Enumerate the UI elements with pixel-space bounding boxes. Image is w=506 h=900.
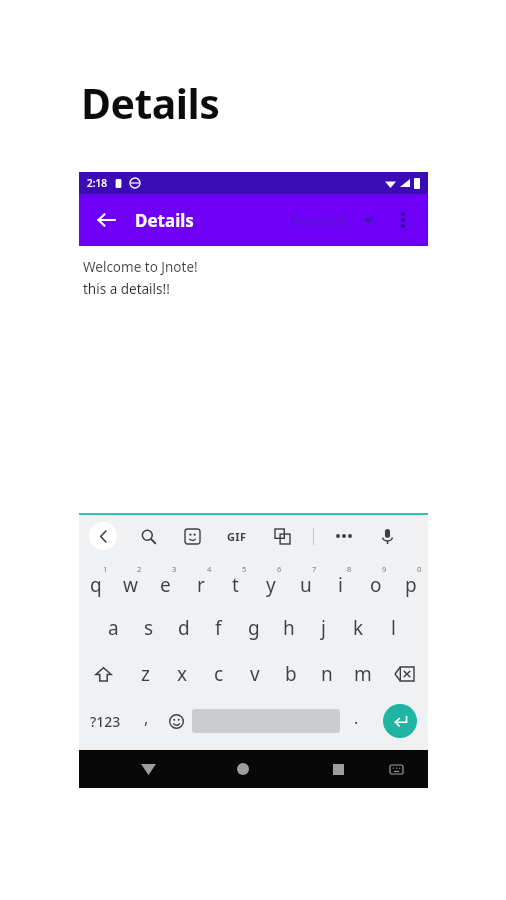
button[interactable]: Emoji (160, 697, 192, 745)
staticText: x (177, 661, 188, 687)
button[interactable]: Home (226, 752, 260, 786)
button[interactable]: Shift (79, 651, 127, 697)
staticText: Welcome to Jnote! (83, 258, 198, 276)
staticText: n (321, 661, 333, 687)
button[interactable]: Voice input (374, 523, 400, 549)
button[interactable]: s (131, 605, 166, 651)
button[interactable]: u (288, 559, 323, 605)
button[interactable]: w (113, 559, 148, 605)
staticText: 5 (242, 564, 247, 574)
button[interactable]: Backspace (381, 651, 428, 697)
staticText: b (285, 661, 297, 687)
staticText: SAVE (116, 529, 148, 545)
staticText: Personal (291, 211, 345, 229)
button[interactable]: , (132, 697, 160, 745)
button[interactable]: k (341, 605, 376, 651)
button[interactable]: l (376, 605, 411, 651)
button[interactable]: y (253, 559, 288, 605)
button[interactable]: SAVE (96, 519, 168, 555)
button[interactable]: More options (388, 205, 418, 235)
staticText: 7 (312, 564, 317, 574)
button[interactable]: q (79, 559, 113, 605)
button[interactable]: Delete (362, 522, 408, 568)
button[interactable]: Recents (321, 752, 355, 786)
button[interactable]: a (96, 605, 131, 651)
staticText: u (300, 572, 312, 598)
staticText: p (405, 572, 417, 598)
button[interactable]: Stickers (179, 523, 205, 549)
staticText: j (321, 615, 326, 641)
button[interactable]: ?123 (79, 697, 132, 745)
button[interactable]: h (271, 605, 306, 651)
staticText: 1 (103, 564, 108, 574)
button[interactable]: j (306, 605, 341, 651)
staticText: z (141, 661, 150, 687)
button[interactable]: z (127, 651, 164, 697)
staticText: f (215, 615, 222, 641)
staticText: 0 (417, 564, 422, 574)
staticText: 3 (172, 564, 177, 574)
button[interactable]: r (183, 559, 218, 605)
staticText: w (123, 572, 138, 598)
button[interactable]: Enter (383, 704, 417, 738)
staticText: Details (81, 75, 220, 131)
button[interactable]: g (236, 605, 271, 651)
button[interactable]: p (393, 559, 428, 605)
button[interactable]: e (148, 559, 183, 605)
button[interactable]: b (273, 651, 309, 697)
button[interactable]: Back (89, 203, 123, 237)
button[interactable]: i (323, 559, 358, 605)
staticText: d (178, 615, 190, 641)
staticText: r (197, 572, 205, 598)
staticText: o (370, 572, 382, 598)
staticText: k (353, 615, 364, 641)
staticText: this a details!! (83, 280, 170, 298)
staticText: a (108, 615, 119, 641)
staticText: q (90, 572, 102, 598)
staticText: t (232, 572, 239, 598)
button[interactable]: Back (131, 752, 165, 786)
staticText: 8 (347, 564, 352, 574)
staticText: m (354, 661, 372, 687)
button[interactable]: Personal (287, 205, 378, 235)
button[interactable]: . (340, 697, 372, 745)
button[interactable]: n (309, 651, 345, 697)
staticText: c (214, 661, 224, 687)
staticText: 9 (382, 564, 387, 574)
button[interactable]: GIF (223, 525, 251, 548)
button[interactable]: Search (135, 523, 161, 549)
button[interactable]: m (345, 651, 381, 697)
staticText: 2:18 (87, 176, 107, 190)
staticText: i (338, 572, 343, 598)
button[interactable]: f (201, 605, 236, 651)
button[interactable]: Translate (269, 523, 295, 549)
staticText: l (391, 615, 396, 641)
staticText: e (160, 572, 171, 598)
staticText: y (266, 572, 276, 598)
staticText: GIF (227, 529, 247, 544)
button[interactable]: Back (89, 522, 117, 550)
staticText: Details (135, 209, 194, 232)
staticText: 2 (137, 564, 142, 574)
staticText: , (144, 707, 149, 729)
button[interactable]: x (164, 651, 201, 697)
button[interactable]: t (218, 559, 253, 605)
staticText: g (248, 615, 260, 641)
staticText: s (144, 615, 154, 641)
button[interactable]: Switch keyboard (381, 754, 411, 784)
staticText: . (354, 707, 359, 729)
button[interactable]: c (201, 651, 237, 697)
button[interactable]: d (166, 605, 201, 651)
button[interactable]: v (237, 651, 273, 697)
button[interactable]: More (332, 530, 356, 542)
button[interactable]: o (358, 559, 393, 605)
staticText: 4 (207, 564, 212, 574)
staticText: ?123 (90, 712, 121, 731)
staticText: h (283, 615, 295, 641)
staticText: v (250, 661, 260, 687)
staticText: 6 (277, 564, 282, 574)
